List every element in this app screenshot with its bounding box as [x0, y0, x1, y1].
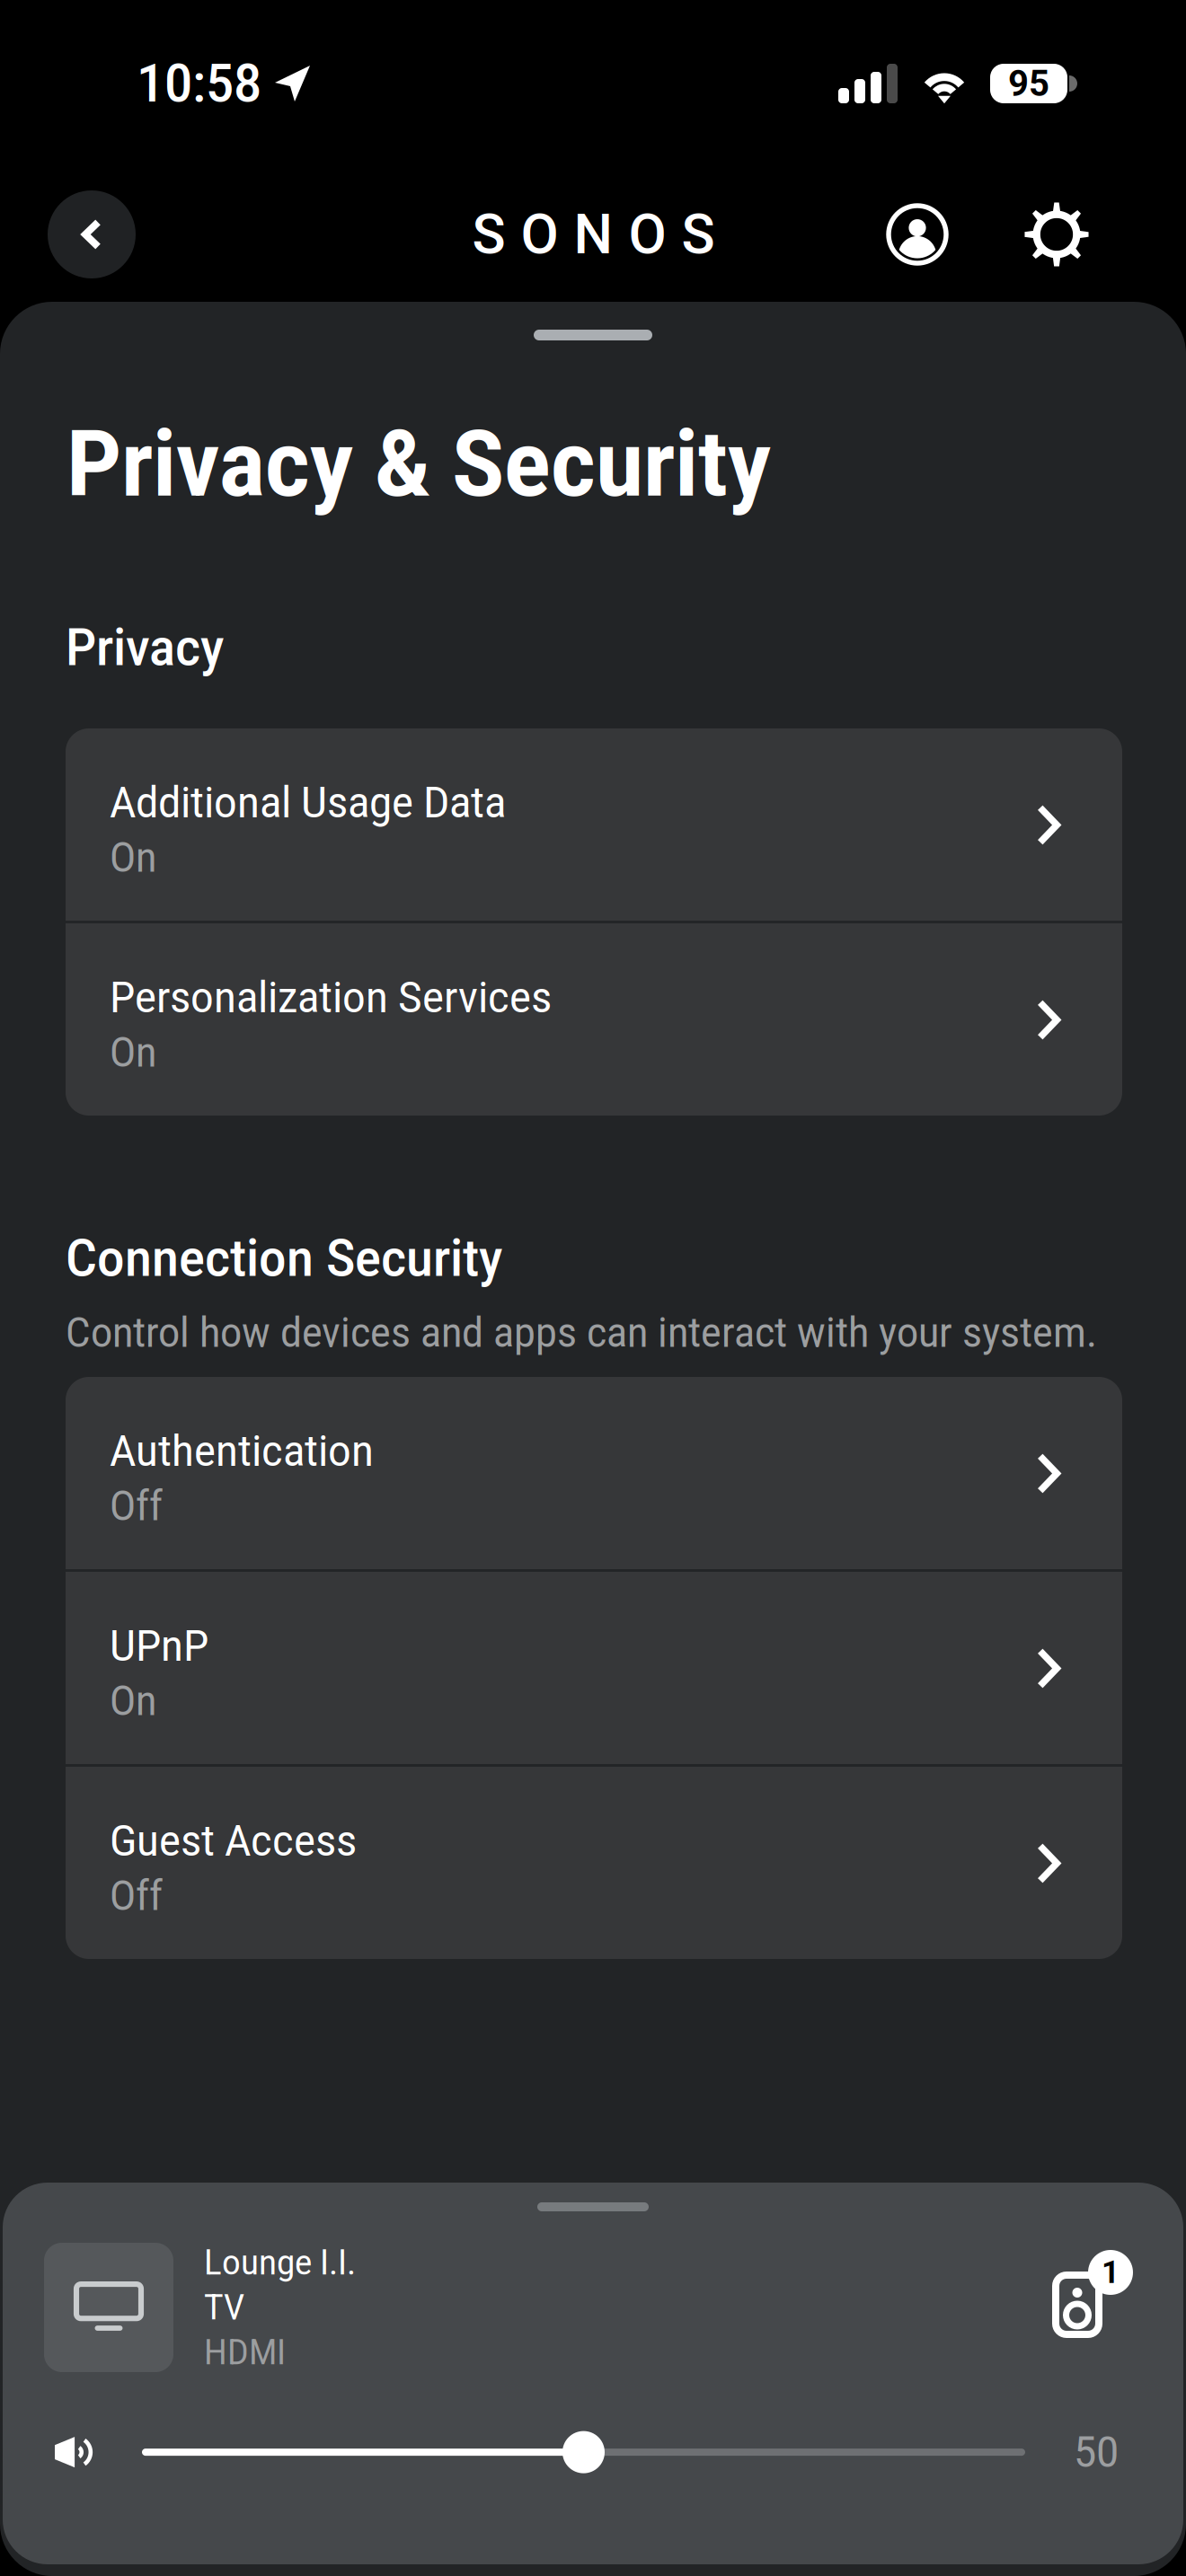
staticText: On	[110, 834, 156, 882]
staticText: Additional Usage Data	[110, 777, 506, 828]
button[interactable]: Guest Access	[66, 1767, 1122, 1959]
staticText: 10:58	[137, 53, 261, 114]
button[interactable]: Personalization Services	[66, 923, 1122, 1116]
staticText: Control how devices and apps can interac…	[66, 1309, 1097, 1357]
button[interactable]: Lounge I.I.	[3, 2211, 1183, 2375]
button[interactable]: Settings	[1013, 190, 1101, 278]
staticText: HDMI	[204, 2332, 286, 2373]
staticText: Guest Access	[110, 1816, 357, 1866]
staticText: Off	[110, 1482, 163, 1530]
staticText: Privacy	[66, 617, 224, 678]
staticText: SONOS	[472, 202, 715, 267]
staticText: 1	[1102, 2254, 1120, 2291]
staticText: On	[110, 1677, 156, 1725]
staticText: Authentication	[110, 1426, 374, 1476]
staticText: Off	[110, 1872, 163, 1920]
button[interactable]: Back	[48, 190, 136, 278]
staticText: Privacy & Security	[66, 411, 771, 518]
staticText: 95	[1008, 63, 1049, 105]
button[interactable]: UPnP	[66, 1572, 1122, 1764]
staticText: UPnP	[110, 1621, 208, 1671]
staticText: 50	[1074, 2427, 1119, 2477]
staticText: Connection Security	[66, 1228, 502, 1289]
staticText: On	[110, 1029, 156, 1076]
button[interactable]: Authentication	[66, 1377, 1122, 1569]
button[interactable]: Additional Usage Data	[66, 728, 1122, 921]
staticText: Personalization Services	[110, 972, 552, 1023]
staticText: TV	[204, 2287, 244, 2328]
staticText: Lounge I.I.	[204, 2242, 356, 2283]
button[interactable]: Account	[873, 190, 961, 278]
